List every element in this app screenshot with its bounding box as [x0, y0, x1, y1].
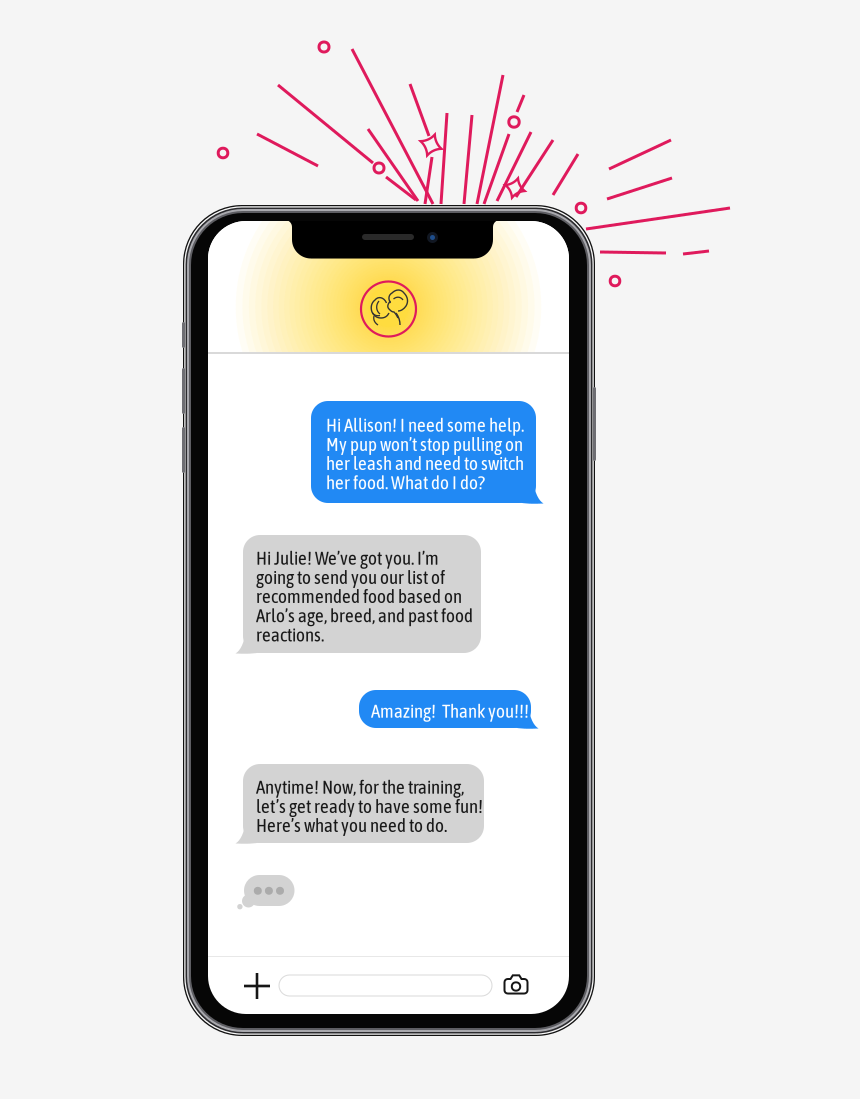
staticText: Hi Allison! I need some help. My pup won… [326, 414, 524, 493]
staticText: Hi Julie! We’ve got you. I’m going to se… [256, 547, 473, 645]
staticText: Anytime! Now, for the training, let’s ge… [256, 776, 483, 836]
staticText: Amazing! Thank you!!! [371, 700, 529, 722]
button[interactable]: Camera [0, 0, 860, 1099]
